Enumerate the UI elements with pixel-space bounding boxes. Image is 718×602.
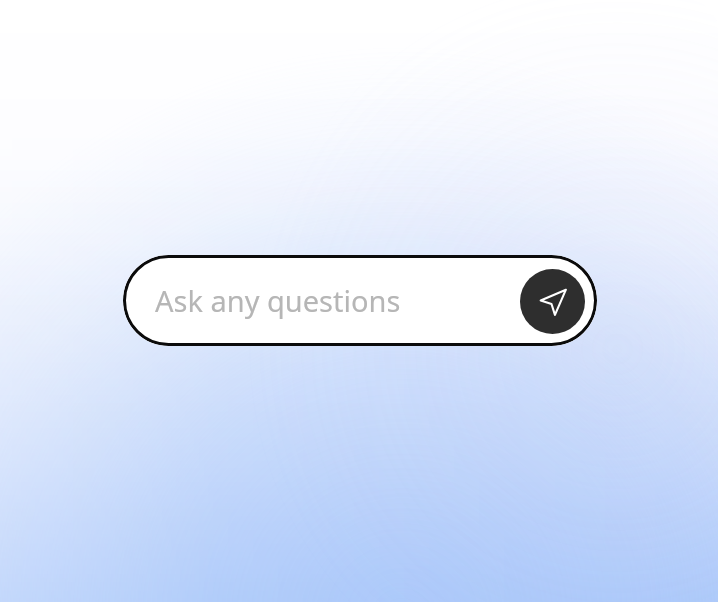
button[interactable]: Send bbox=[520, 269, 585, 334]
staticText: Ask any questions bbox=[155, 281, 401, 320]
button[interactable]: Ask any questions bbox=[123, 255, 597, 346]
